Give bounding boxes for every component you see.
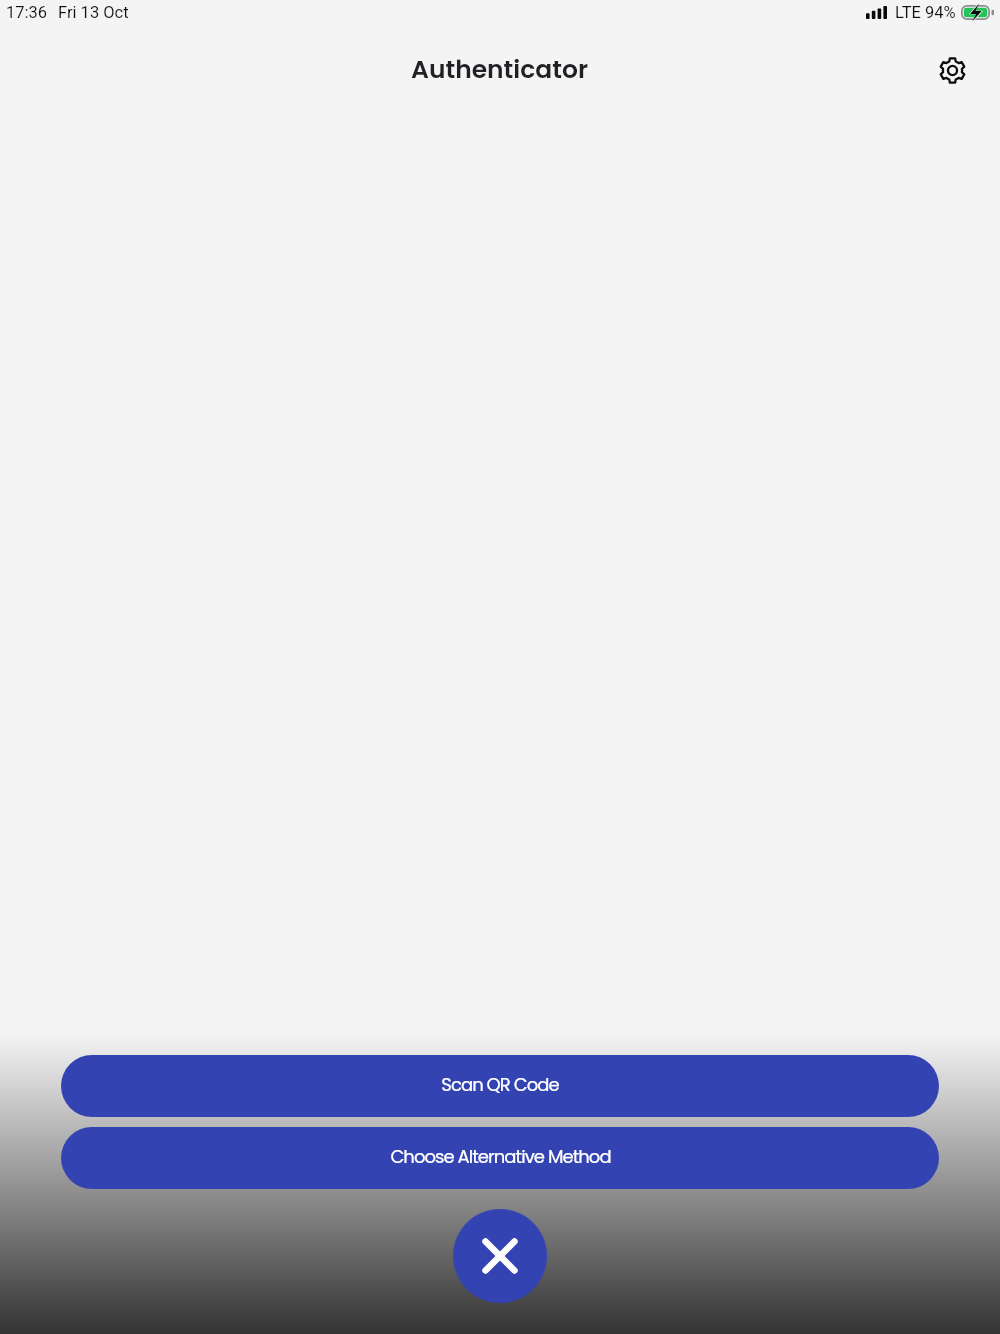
staticText: 17:36 [6,3,48,22]
staticText: LTE 94% [895,3,956,22]
button[interactable]: Choose Alternative Method [61,1127,939,1189]
staticText: Authenticator [411,52,589,87]
staticText: Choose Alternative Method [390,1144,611,1169]
staticText: Fri 13 Oct [58,3,129,22]
staticText: Scan QR Code [441,1072,559,1097]
button[interactable]: Close [453,1209,547,1303]
button[interactable]: Settings [930,48,974,92]
button[interactable]: Scan QR Code [61,1055,939,1117]
